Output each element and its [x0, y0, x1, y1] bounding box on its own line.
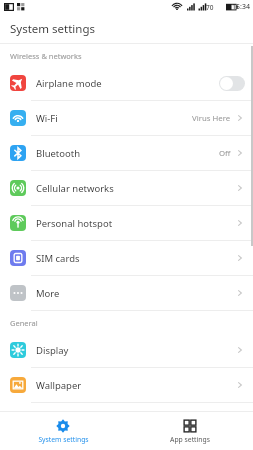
staticText: 70: [206, 3, 214, 12]
staticText: Wi-Fi: [36, 112, 192, 125]
staticText: Personal hotspot: [36, 217, 235, 230]
button[interactable]: SIM cards: [0, 241, 253, 275]
staticText: Cellular networks: [36, 182, 235, 195]
button[interactable]: App settings: [126, 412, 253, 450]
button[interactable]: Wi-Fi: [0, 101, 253, 135]
button[interactable]: More: [0, 276, 253, 310]
staticText: Virus Here: [192, 113, 231, 124]
staticText: Off: [219, 148, 231, 159]
staticText: Wireless & networks: [10, 51, 82, 61]
staticText: System settings: [38, 435, 89, 444]
button[interactable]: Wallpaper: [0, 368, 253, 402]
staticText: Airplane mode: [36, 77, 219, 90]
staticText: Wallpaper: [36, 379, 235, 392]
button[interactable]: Bluetooth: [0, 136, 253, 170]
button[interactable]: Personal hotspot: [0, 206, 253, 240]
staticText: More: [36, 287, 235, 300]
staticText: 15:34: [232, 2, 250, 12]
button[interactable]: Display: [0, 333, 253, 367]
button[interactable]: Airplane mode toggle: [219, 76, 245, 91]
staticText: Display: [36, 344, 235, 357]
staticText: System settings: [10, 21, 96, 37]
button[interactable]: Cellular networks: [0, 171, 253, 205]
button[interactable]: Airplane mode: [0, 66, 253, 100]
staticText: General: [10, 318, 38, 328]
staticText: SIM cards: [36, 252, 235, 265]
staticText: Bluetooth: [36, 147, 219, 160]
staticText: App settings: [170, 435, 210, 444]
button[interactable]: System settings: [0, 412, 126, 450]
